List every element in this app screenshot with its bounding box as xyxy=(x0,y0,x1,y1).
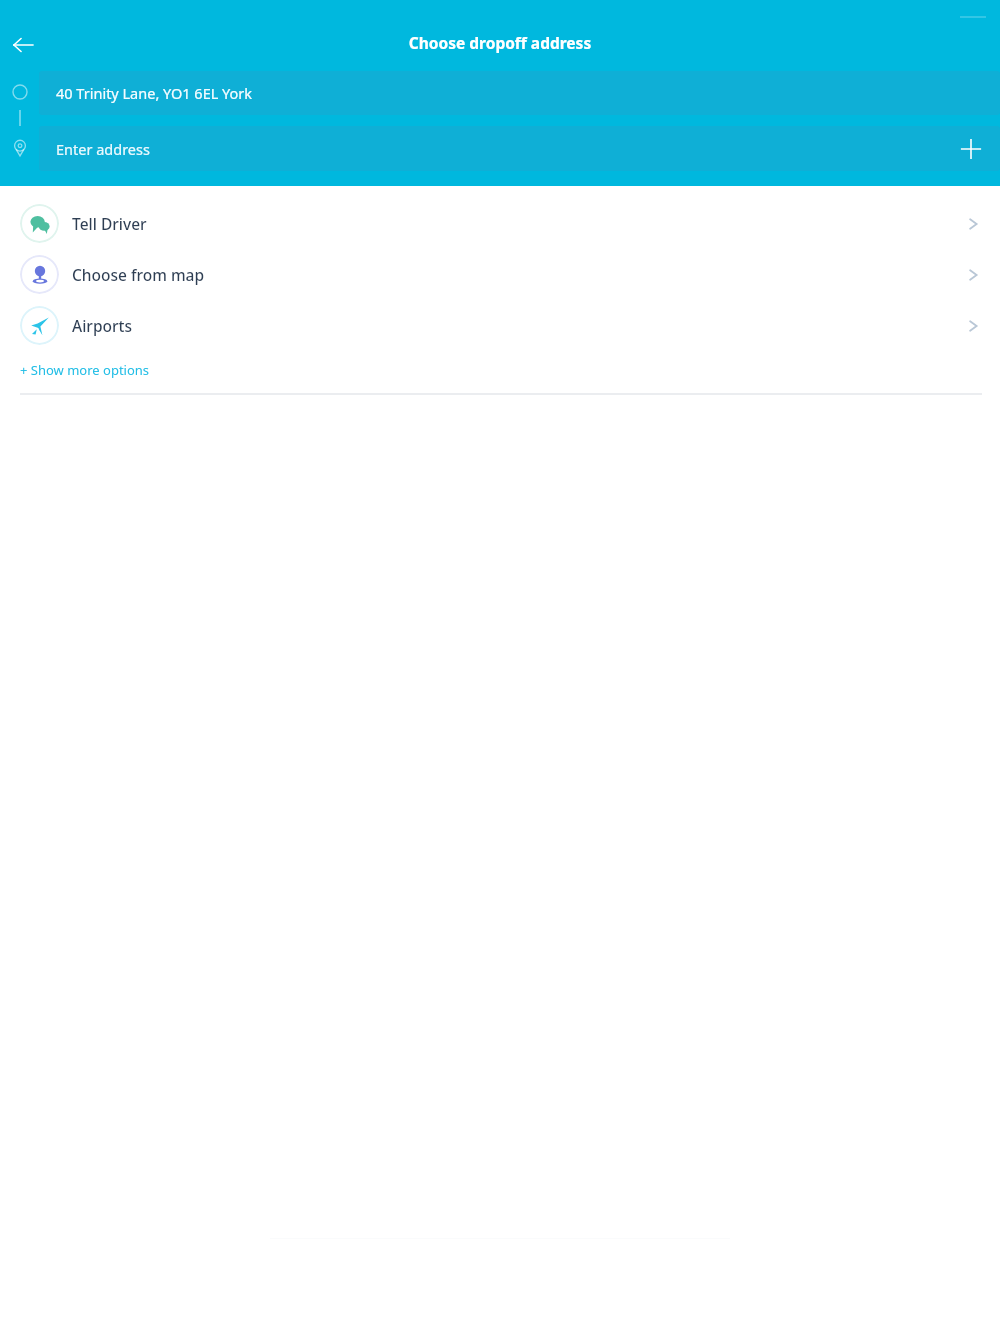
button[interactable]: Add address xyxy=(950,128,992,170)
staticText: 40 Trinity Lane, YO1 6EL York xyxy=(56,83,253,103)
staticText: Tell Driver xyxy=(72,213,147,234)
staticText: + Show more options xyxy=(20,361,150,379)
staticText: Choose from map xyxy=(72,264,205,285)
staticText: Enter address xyxy=(56,139,150,159)
button[interactable]: Choose from map xyxy=(0,249,1000,300)
staticText: Airports xyxy=(72,315,133,336)
button[interactable]: Enter address xyxy=(39,126,1000,171)
button[interactable]: + Show more options xyxy=(0,351,1000,393)
button[interactable]: Tell Driver xyxy=(0,198,1000,249)
button[interactable]: 40 Trinity Lane, YO1 6EL York xyxy=(39,71,1000,115)
button[interactable]: Airports xyxy=(0,300,1000,351)
button[interactable]: Back xyxy=(0,22,46,68)
staticText: Choose dropoff address xyxy=(0,32,1000,53)
